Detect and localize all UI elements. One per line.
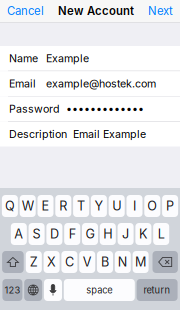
staticText: P	[166, 198, 174, 214]
staticText: Cancel	[7, 4, 44, 18]
button[interactable]: K	[135, 223, 151, 245]
button[interactable]: space	[64, 279, 135, 301]
staticText: I	[133, 198, 136, 214]
button[interactable]: D	[46, 223, 62, 245]
staticText: Example	[46, 52, 89, 65]
button[interactable]: G	[82, 223, 98, 245]
button[interactable]: return	[137, 279, 178, 301]
staticText: W	[22, 198, 34, 214]
staticText: D	[50, 226, 59, 242]
staticText: Description	[9, 128, 67, 141]
button[interactable]: E	[37, 195, 53, 217]
button[interactable]: P	[162, 195, 178, 217]
button[interactable]: Cancel	[0, 0, 49, 22]
button[interactable]: X	[44, 251, 60, 273]
button[interactable]: J	[118, 223, 134, 245]
staticText: R	[59, 198, 67, 214]
staticText: O	[147, 198, 157, 214]
staticText: 123	[4, 284, 20, 296]
button[interactable]: M	[133, 251, 149, 273]
button[interactable]: Description	[0, 122, 180, 147]
staticText: X	[47, 254, 56, 270]
button[interactable]: C	[61, 251, 77, 273]
staticText: space	[86, 284, 112, 296]
staticText: Name	[9, 52, 38, 65]
button[interactable]: Email	[0, 71, 180, 96]
staticText: N	[118, 254, 128, 270]
staticText: G	[85, 226, 94, 242]
button[interactable]: B	[97, 251, 113, 273]
staticText: J	[122, 226, 129, 242]
staticText: Next	[148, 4, 173, 18]
button[interactable]: S	[29, 223, 45, 245]
staticText: H	[103, 226, 112, 242]
button[interactable]: T	[73, 195, 89, 217]
button[interactable]: 123	[2, 279, 22, 301]
button[interactable]: L	[153, 223, 169, 245]
button[interactable]: Password	[0, 96, 180, 121]
button[interactable]: I	[126, 195, 142, 217]
button[interactable]: Delete	[152, 251, 178, 273]
button[interactable]: U	[109, 195, 125, 217]
button[interactable]: A	[11, 223, 27, 245]
staticText: Email	[9, 77, 36, 90]
button[interactable]: Q	[2, 195, 18, 217]
staticText: T	[77, 198, 85, 214]
staticText: •••••••••••••	[66, 102, 144, 115]
button[interactable]: V	[79, 251, 95, 273]
button[interactable]: Z	[26, 251, 42, 273]
button[interactable]: Shift	[2, 251, 24, 273]
button[interactable]: Y	[91, 195, 107, 217]
button[interactable]: N	[115, 251, 131, 273]
staticText: F	[69, 226, 76, 242]
button[interactable]: Next keyboard	[24, 279, 42, 301]
staticText: Z	[30, 254, 38, 270]
staticText: Y	[94, 198, 103, 214]
staticText: V	[83, 254, 92, 270]
staticText: New Account	[58, 4, 134, 18]
staticText: Email Example	[73, 128, 146, 141]
button[interactable]: W	[20, 195, 36, 217]
staticText: Password	[9, 102, 60, 115]
button[interactable]: R	[55, 195, 71, 217]
staticText: M	[135, 254, 146, 270]
button[interactable]: Name	[0, 46, 180, 71]
button[interactable]: F	[64, 223, 80, 245]
staticText: L	[158, 226, 165, 242]
staticText: K	[139, 226, 148, 242]
button[interactable]: O	[144, 195, 160, 217]
staticText: U	[112, 198, 121, 214]
staticText: A	[14, 226, 23, 242]
staticText: E	[41, 198, 49, 214]
staticText: S	[33, 226, 41, 242]
staticText: B	[101, 254, 109, 270]
staticText: return	[144, 284, 171, 296]
button[interactable]: Next	[143, 0, 180, 22]
staticText: example@hostek.com	[46, 77, 156, 90]
button[interactable]: Dictation	[44, 279, 62, 301]
staticText: C	[65, 254, 74, 270]
staticText: Q	[5, 198, 15, 214]
button[interactable]: H	[100, 223, 116, 245]
